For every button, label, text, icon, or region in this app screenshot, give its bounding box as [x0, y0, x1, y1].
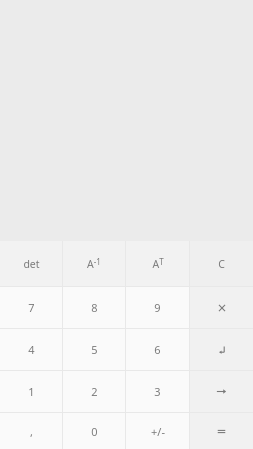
staticText: 9 — [154, 300, 161, 315]
staticText: 1 — [28, 384, 35, 399]
button[interactable]: Multiply — [190, 287, 253, 328]
button[interactable]: 3 — [126, 371, 189, 412]
staticText: 4 — [28, 342, 35, 357]
button[interactable]: 4 — [0, 329, 62, 370]
staticText: 6 — [154, 342, 161, 357]
button[interactable]: A-1 — [63, 241, 125, 286]
button[interactable]: 2 — [63, 371, 125, 412]
staticText: 8 — [91, 300, 98, 315]
staticText: det — [23, 257, 40, 271]
button[interactable]: 5 — [63, 329, 125, 370]
button[interactable]: C — [190, 241, 253, 286]
staticText: 7 — [28, 300, 35, 315]
button[interactable]: det — [0, 241, 62, 286]
staticText: AT — [152, 256, 164, 271]
button[interactable]: +/- — [126, 413, 189, 449]
button[interactable]: 8 — [63, 287, 125, 328]
button[interactable]: 0 — [63, 413, 125, 449]
button[interactable]: Next — [190, 371, 253, 412]
staticText: , — [30, 424, 33, 439]
staticText: A-1 — [87, 256, 101, 271]
button[interactable]: New row — [190, 329, 253, 370]
button[interactable]: 1 — [0, 371, 62, 412]
staticText: +/- — [151, 424, 165, 439]
button[interactable]: , — [0, 413, 62, 449]
staticText: 0 — [91, 424, 98, 439]
staticText: C — [218, 257, 225, 271]
button[interactable]: AT — [126, 241, 189, 286]
staticText: 5 — [91, 342, 98, 357]
staticText: 3 — [154, 384, 161, 399]
button[interactable]: 6 — [126, 329, 189, 370]
button[interactable]: 9 — [126, 287, 189, 328]
button[interactable]: 7 — [0, 287, 62, 328]
button[interactable]: Equals — [190, 413, 253, 449]
staticText: 2 — [91, 384, 98, 399]
